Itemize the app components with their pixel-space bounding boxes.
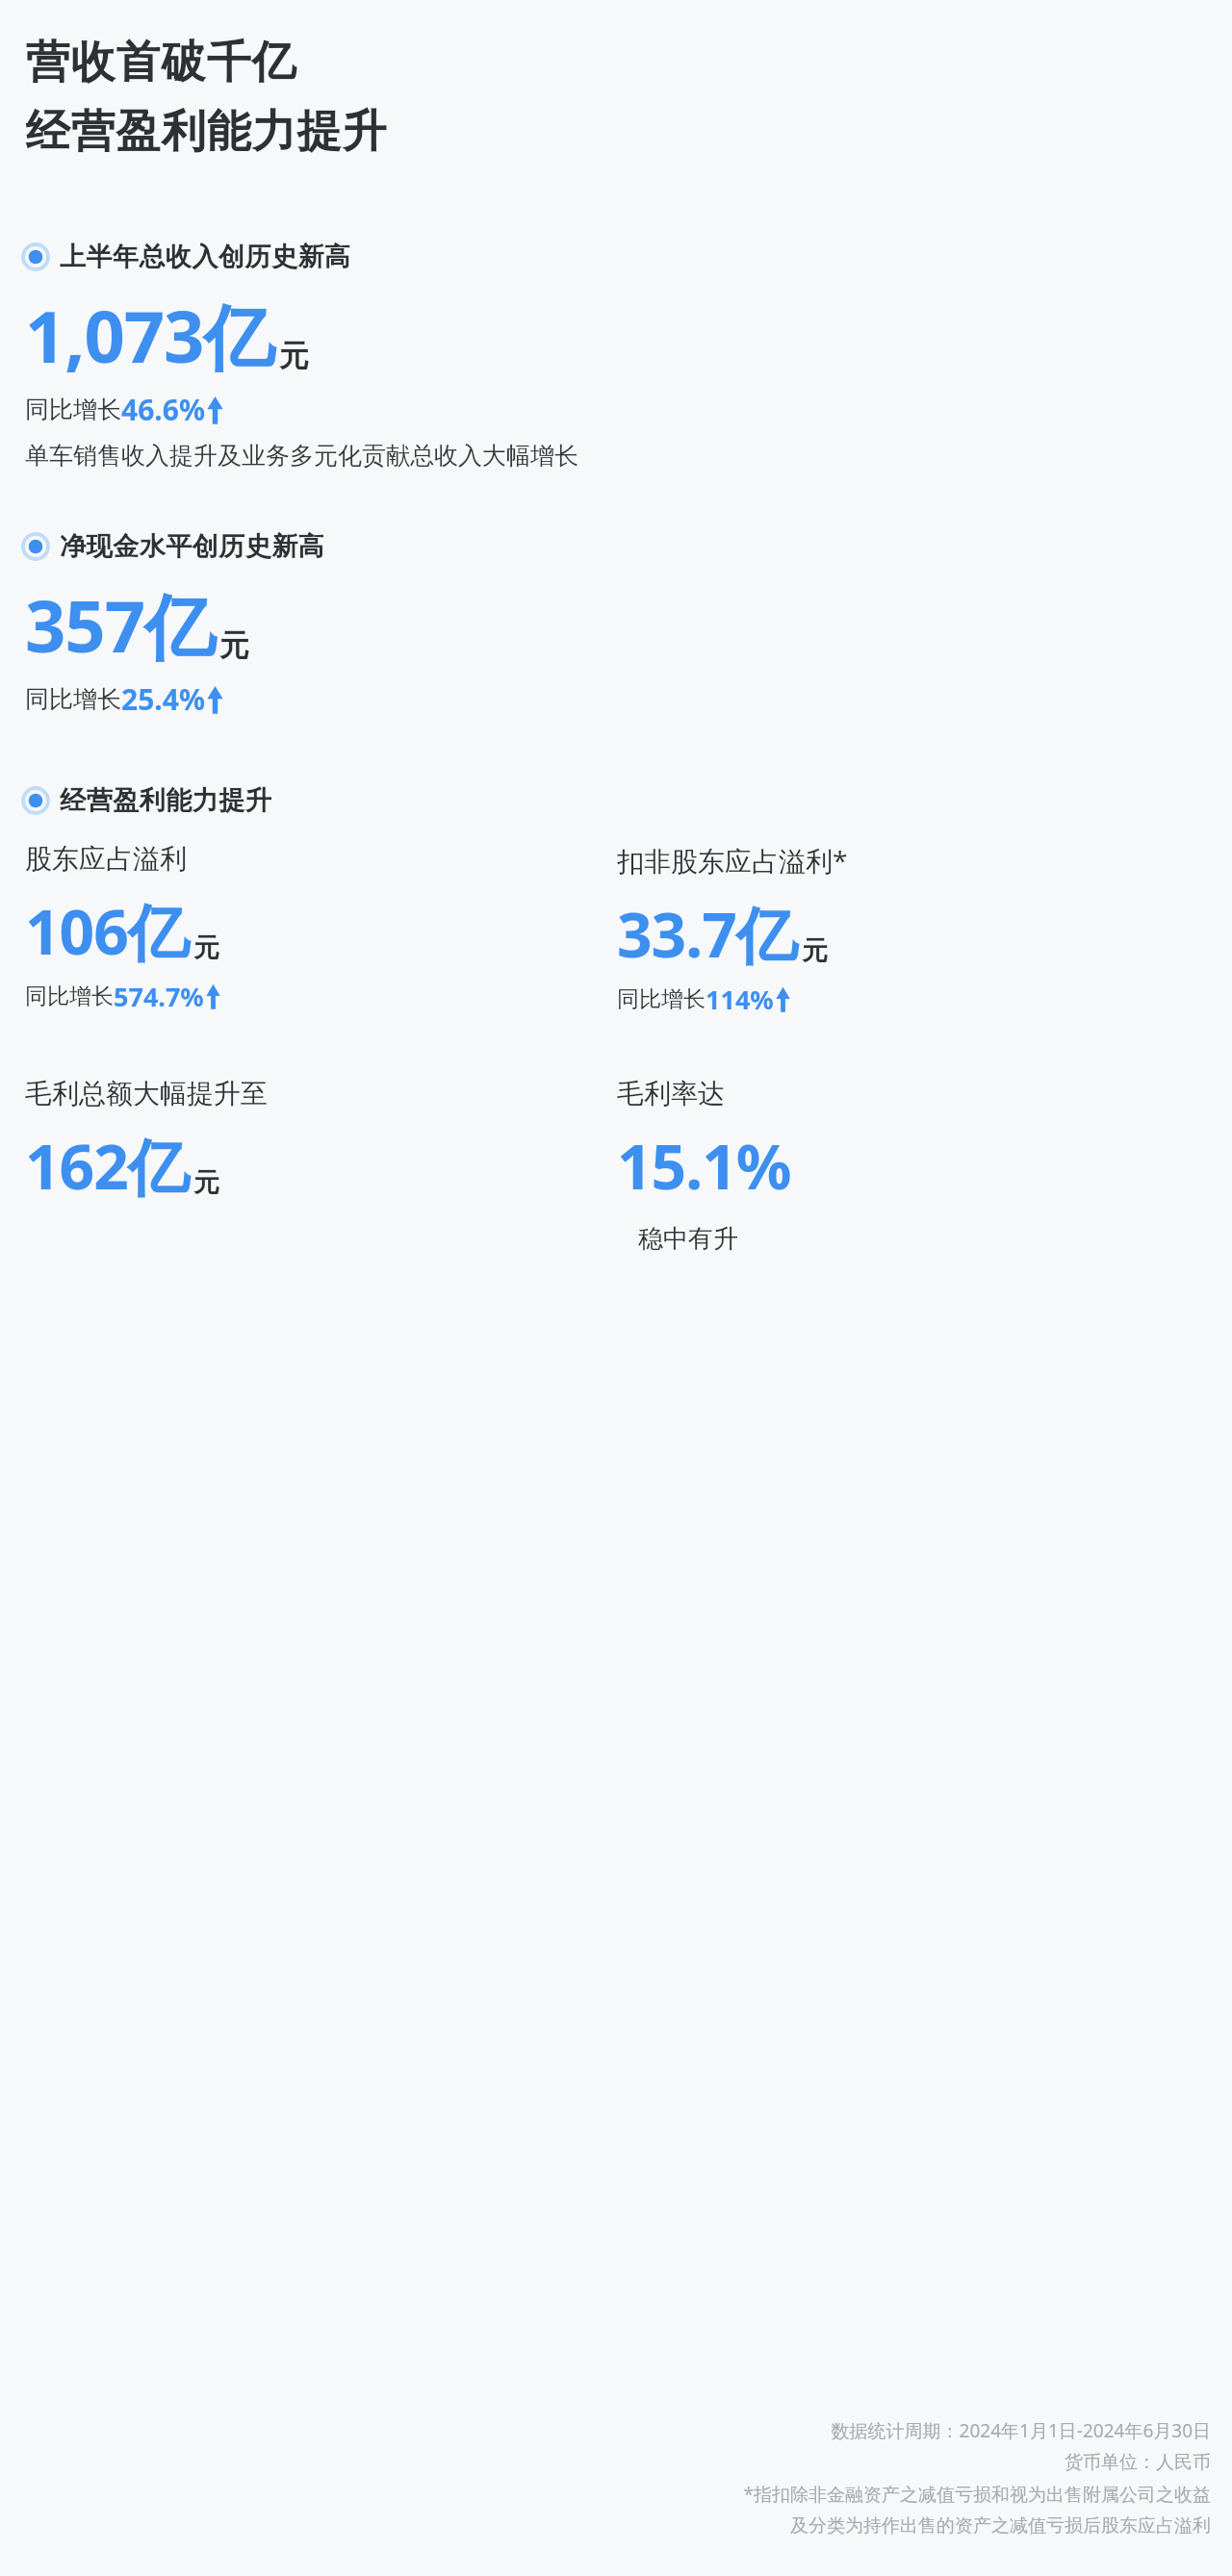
staticText: 46.6% xyxy=(121,390,205,429)
staticText: 扣非股东应占溢利* xyxy=(617,842,848,879)
staticText: 元 xyxy=(219,626,249,664)
button[interactable]: 经营盈利能力提升 xyxy=(23,784,1211,817)
staticText: 1,073亿 xyxy=(25,287,274,384)
staticText: 稳中有升 xyxy=(638,1223,738,1255)
staticText: 15.1% xyxy=(617,1124,791,1208)
staticText: 上半年总收入创历史新高 xyxy=(60,241,351,273)
staticText: 同比增长 xyxy=(25,684,121,714)
staticText: 162亿 xyxy=(25,1124,189,1208)
staticText: 同比增长 xyxy=(617,985,706,1013)
staticText: 数据统计周期：2024年1月1日-2024年6月30日 xyxy=(831,2418,1211,2443)
staticText: 经营盈利能力提升 xyxy=(25,104,387,160)
staticText: 元 xyxy=(802,934,828,967)
staticText: *指扣除非金融资产之减值亏损和视为出售附属公司之收益 xyxy=(743,2482,1211,2507)
staticText: 营收首破千亿 xyxy=(25,35,296,90)
staticText: 毛利率达 xyxy=(617,1077,725,1110)
staticText: 574.7% xyxy=(114,979,204,1014)
staticText: 元 xyxy=(193,1166,219,1199)
button[interactable]: 上半年总收入创历史新高 xyxy=(23,241,1211,273)
button[interactable]: 净现金水平创历史新高 xyxy=(23,530,1211,563)
staticText: 股东应占溢利 xyxy=(25,842,187,876)
staticText: 货币单位：人民币 xyxy=(1065,2451,1211,2474)
staticText: 净现金水平创历史新高 xyxy=(60,530,324,563)
staticText: 同比增长 xyxy=(25,395,121,424)
staticText: 106亿 xyxy=(25,889,189,973)
staticText: 同比增长 xyxy=(25,982,114,1010)
staticText: 经营盈利能力提升 xyxy=(60,784,271,817)
staticText: 33.7亿 xyxy=(617,892,797,976)
staticText: 25.4% xyxy=(121,679,205,719)
staticText: 元 xyxy=(279,337,309,374)
staticText: 114% xyxy=(706,982,774,1017)
staticText: 单车销售收入提升及业务多元化贡献总收入大幅增长 xyxy=(25,441,578,471)
staticText: 及分类为持作出售的资产之减值亏损后股东应占溢利 xyxy=(790,2514,1211,2538)
staticText: 357亿 xyxy=(25,576,215,674)
staticText: 毛利总额大幅提升至 xyxy=(25,1077,268,1110)
staticText: 元 xyxy=(193,931,219,964)
